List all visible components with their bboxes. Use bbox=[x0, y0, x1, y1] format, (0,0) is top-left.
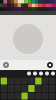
button[interactable]: Tool bbox=[38, 71, 44, 75]
button[interactable]: Colour swatch bbox=[10, 7, 14, 11]
button[interactable]: Colour swatch bbox=[45, 0, 49, 4]
button[interactable]: Tool bbox=[28, 85, 35, 92]
button[interactable]: Colour swatch bbox=[21, 0, 24, 4]
button[interactable]: Colour swatch bbox=[42, 0, 45, 4]
button[interactable]: Colour swatch bbox=[42, 7, 45, 11]
button[interactable]: Colour swatch bbox=[0, 0, 3, 4]
button[interactable]: Colour swatch bbox=[24, 0, 28, 4]
button[interactable]: Colour swatch bbox=[52, 7, 56, 11]
button[interactable]: Colour swatch bbox=[52, 0, 56, 4]
button[interactable]: Colour swatch bbox=[17, 7, 21, 11]
button[interactable]: Colour swatch bbox=[42, 4, 45, 7]
button[interactable]: Tool bbox=[35, 85, 42, 92]
button[interactable]: Colour swatch bbox=[31, 7, 35, 11]
button[interactable]: Colour swatch bbox=[14, 7, 17, 11]
button[interactable]: Colour swatch bbox=[31, 0, 35, 4]
button[interactable]: Colour swatch bbox=[45, 7, 49, 11]
button[interactable]: Colour swatch bbox=[24, 7, 28, 11]
button[interactable]: Tool bbox=[28, 92, 35, 99]
button[interactable]: Tool bbox=[26, 71, 32, 75]
button[interactable]: Colour swatch bbox=[3, 0, 7, 4]
button[interactable]: Tool bbox=[14, 92, 21, 99]
button[interactable]: Tool bbox=[35, 77, 42, 84]
button[interactable]: Opacity bbox=[47, 62, 56, 68]
button[interactable]: Colour swatch bbox=[52, 4, 56, 7]
button[interactable]: Colour swatch bbox=[0, 4, 3, 7]
button[interactable]: Colour swatch bbox=[7, 7, 10, 11]
button[interactable]: Tool bbox=[50, 71, 56, 75]
button[interactable]: Colour swatch bbox=[49, 7, 52, 11]
button[interactable]: Colour swatch bbox=[0, 7, 3, 11]
button[interactable]: Colour swatch bbox=[7, 0, 10, 4]
button[interactable]: Tool bbox=[21, 85, 28, 92]
button[interactable]: Colour swatch bbox=[28, 0, 31, 4]
button[interactable]: Colour swatch bbox=[10, 4, 14, 7]
button[interactable]: Tool bbox=[35, 92, 42, 99]
button[interactable]: Tool bbox=[44, 71, 50, 75]
button[interactable]: Colour swatch bbox=[21, 7, 24, 11]
button[interactable]: Colour swatch bbox=[14, 0, 17, 4]
button[interactable]: Colour swatch bbox=[35, 0, 38, 4]
button[interactable]: Colour swatch bbox=[28, 7, 31, 11]
button[interactable]: Colour swatch bbox=[10, 0, 14, 4]
button[interactable]: Colour swatch bbox=[38, 0, 42, 4]
button[interactable]: Colour swatch bbox=[38, 7, 42, 11]
button[interactable]: Tool bbox=[32, 71, 38, 75]
button[interactable]: Tool bbox=[14, 77, 21, 84]
button[interactable]: Colour swatch bbox=[35, 7, 38, 11]
button[interactable]: Colour swatch bbox=[14, 4, 17, 7]
button[interactable]: Colour swatch bbox=[38, 4, 42, 7]
button[interactable]: Tool bbox=[28, 77, 35, 84]
button[interactable]: Tool bbox=[21, 77, 28, 84]
button[interactable]: Tool bbox=[42, 92, 48, 99]
button[interactable]: Tool bbox=[1, 92, 7, 99]
button[interactable]: Colour swatch bbox=[49, 0, 52, 4]
button[interactable]: Tool bbox=[14, 85, 21, 92]
button[interactable]: Tool bbox=[49, 92, 55, 99]
button[interactable]: Tool bbox=[21, 92, 28, 99]
button[interactable]: Brush size bbox=[0, 62, 9, 68]
button[interactable]: Colour swatch bbox=[28, 4, 31, 7]
button[interactable]: Colour swatch bbox=[17, 0, 21, 4]
button[interactable]: Tool bbox=[8, 92, 14, 99]
